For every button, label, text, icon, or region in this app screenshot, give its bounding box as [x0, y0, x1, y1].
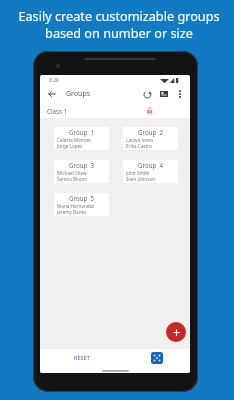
- button[interactable]: Unlock class: [142, 103, 156, 118]
- staticText: Groups: [66, 89, 91, 99]
- button[interactable]: Group 3: [54, 160, 109, 183]
- staticText: Sven Johnson: [126, 176, 156, 182]
- staticText: Jorge Lopez: [57, 143, 83, 149]
- button[interactable]: Randomize groups: [149, 350, 165, 366]
- staticText: Group 4: [126, 161, 175, 169]
- staticText: Group 1: [57, 128, 106, 136]
- staticText: RESET: [74, 354, 90, 361]
- button[interactable]: Name cards: [155, 85, 172, 103]
- staticText: Jeremy Banks: [57, 209, 87, 215]
- button[interactable]: Group 5: [54, 193, 109, 216]
- staticText: Maria Hernandez: [57, 203, 95, 209]
- button[interactable]: Back: [44, 85, 60, 103]
- button[interactable]: Group 4: [123, 160, 178, 183]
- staticText: Class 1: [47, 107, 68, 115]
- button[interactable]: Add group: [166, 322, 186, 342]
- button[interactable]: More options: [172, 85, 187, 103]
- button[interactable]: RESET: [74, 354, 90, 361]
- staticText: Serena Bloom: [57, 176, 88, 182]
- button[interactable]: Group 1: [54, 127, 109, 150]
- staticText: Group 5: [57, 194, 106, 202]
- staticText: based on number or size: [45, 24, 193, 41]
- staticText: Erika Castro: [126, 143, 152, 149]
- staticText: Latoya Jones: [126, 137, 154, 143]
- staticText: Group 3: [57, 161, 106, 169]
- button[interactable]: Refresh: [139, 85, 155, 103]
- staticText: Group 2: [126, 128, 175, 136]
- button[interactable]: Group 2: [123, 127, 178, 150]
- staticText: Michael Shaw: [57, 170, 87, 176]
- staticText: 8:28: [49, 77, 59, 84]
- staticText: Easily create customizable groups: [18, 7, 220, 24]
- staticText: Celeste Monroe: [57, 137, 91, 143]
- staticText: John Smith: [126, 170, 150, 176]
